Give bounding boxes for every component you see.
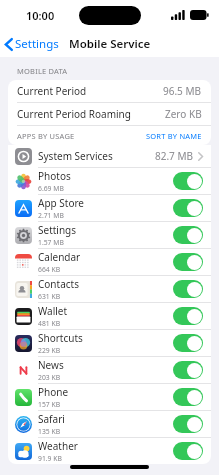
- staticText: MOBILE DATA: [17, 66, 68, 76]
- staticText: Weather: [38, 439, 78, 453]
- staticText: Current Period Roaming: [17, 107, 131, 121]
- staticText: 157 KB: [38, 400, 61, 409]
- staticText: 2.71 MB: [38, 211, 64, 220]
- button[interactable]: Photos: [8, 168, 211, 194]
- staticText: 203 KB: [38, 373, 61, 382]
- button[interactable]: Toggle mobile data: [173, 334, 203, 352]
- staticText: Phone: [38, 385, 69, 399]
- button[interactable]: Settings: [0, 32, 65, 56]
- button[interactable]: Toggle mobile data: [173, 388, 203, 406]
- button[interactable]: Toggle mobile data: [173, 226, 203, 244]
- staticText: 96.5 MB: [163, 84, 202, 98]
- staticText: News: [38, 358, 64, 372]
- staticText: Shortcuts: [38, 331, 83, 345]
- staticText: 1.57 MB: [38, 238, 64, 247]
- button[interactable]: Phone: [8, 384, 211, 410]
- staticText: App Store: [38, 196, 85, 210]
- button[interactable]: System Services: [8, 145, 211, 167]
- staticText: 6.69 MB: [38, 184, 64, 193]
- button[interactable]: Current Period: [8, 80, 211, 102]
- button[interactable]: SORT BY NAME: [137, 128, 211, 144]
- button[interactable]: Safari: [8, 411, 211, 437]
- staticText: Wallet: [38, 304, 68, 318]
- button[interactable]: Settings: [8, 222, 211, 248]
- button[interactable]: Toggle mobile data: [173, 415, 203, 433]
- staticText: Calendar: [38, 250, 81, 264]
- staticText: SORT BY NAME: [146, 131, 202, 141]
- button[interactable]: News: [8, 357, 211, 383]
- staticText: Safari: [38, 412, 65, 426]
- staticText: Settings: [38, 223, 77, 237]
- button[interactable]: App Store: [8, 195, 211, 221]
- staticText: Settings: [15, 36, 59, 52]
- staticText: Photos: [38, 169, 71, 183]
- staticText: Current Period: [17, 84, 87, 98]
- staticText: System Services: [38, 149, 113, 163]
- staticText: Mobile Service: [69, 36, 151, 52]
- button[interactable]: Toggle mobile data: [173, 172, 203, 190]
- staticText: 481 KB: [38, 319, 61, 328]
- other: Open System Services: [198, 152, 203, 161]
- button[interactable]: Wallet: [8, 303, 211, 329]
- button[interactable]: Contacts: [8, 276, 211, 302]
- staticText: Zero KB: [165, 107, 202, 121]
- button[interactable]: Weather: [8, 438, 211, 464]
- button[interactable]: Toggle mobile data: [173, 280, 203, 298]
- button[interactable]: Toggle mobile data: [173, 307, 203, 325]
- button[interactable]: Shortcuts: [8, 330, 211, 356]
- staticText: 91.9 KB: [38, 454, 62, 463]
- button[interactable]: Toggle mobile data: [173, 361, 203, 379]
- staticText: 664 KB: [38, 265, 61, 274]
- button[interactable]: Toggle mobile data: [173, 253, 203, 271]
- staticText: 135 KB: [38, 427, 61, 436]
- button[interactable]: Calendar: [8, 249, 211, 275]
- staticText: 10:00: [26, 8, 55, 23]
- button[interactable]: Toggle mobile data: [173, 442, 203, 460]
- button[interactable]: Current Period Roaming: [8, 103, 211, 125]
- staticText: Contacts: [38, 277, 79, 291]
- staticText: 631 KB: [38, 292, 61, 301]
- staticText: 229 KB: [38, 346, 61, 355]
- staticText: 82.7 MB: [155, 149, 194, 163]
- staticText: APPS BY USAGE: [17, 131, 75, 141]
- button[interactable]: Toggle mobile data: [173, 199, 203, 217]
